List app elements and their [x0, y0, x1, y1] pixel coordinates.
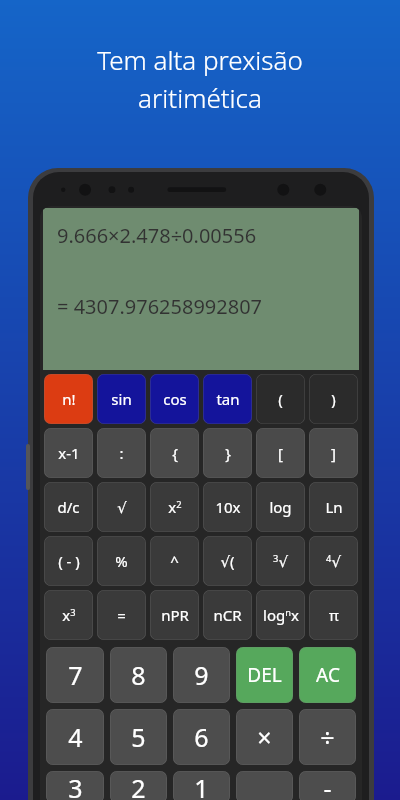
staticText: 5	[131, 720, 146, 754]
staticText: 2	[131, 771, 146, 800]
button[interactable]: }	[203, 428, 252, 478]
button[interactable]: 4	[46, 709, 104, 765]
button[interactable]: 10x	[203, 482, 252, 532]
staticText: %	[115, 551, 128, 571]
staticText: Ln	[325, 497, 343, 517]
staticText: 9.666×2.478÷0.00556	[57, 222, 257, 249]
staticText: )	[331, 389, 336, 409]
button[interactable]: nPR	[150, 590, 199, 640]
button[interactable]: 6	[173, 709, 230, 765]
button[interactable]: 1	[173, 771, 230, 800]
button[interactable]: √	[97, 482, 146, 532]
button[interactable]: Ln	[309, 482, 358, 532]
staticText: }	[225, 443, 231, 463]
staticText: π	[329, 605, 339, 625]
staticText: (	[278, 389, 283, 409]
button[interactable]: x2	[150, 482, 199, 532]
button[interactable]: n!	[44, 374, 93, 424]
staticText: cos	[163, 389, 187, 409]
staticText: ]	[331, 443, 336, 463]
staticText: x3	[62, 605, 76, 625]
button[interactable]: DEL	[236, 647, 293, 703]
staticText: tan	[216, 389, 240, 409]
button[interactable]: :	[97, 428, 146, 478]
staticText: ÷	[320, 720, 335, 754]
staticText: 9	[194, 658, 209, 692]
staticText: 3	[68, 771, 83, 800]
button[interactable]: log	[256, 482, 305, 532]
button[interactable]: =	[97, 590, 146, 640]
staticText: ^	[170, 551, 179, 571]
staticText: 6	[194, 720, 209, 754]
staticText: =	[117, 605, 126, 625]
button[interactable]: ^	[150, 536, 199, 586]
staticText: √(	[220, 551, 235, 571]
button[interactable]: {	[150, 428, 199, 478]
button[interactable]: [	[256, 428, 305, 478]
button[interactable]: 9	[173, 647, 230, 703]
button[interactable]: 2	[110, 771, 167, 800]
button[interactable]: 5	[110, 709, 167, 765]
staticText: ×	[257, 720, 272, 754]
staticText: x-1	[58, 443, 80, 463]
staticText: 4√	[326, 552, 341, 570]
button[interactable]: ( - )	[44, 536, 93, 586]
staticText: Tem alta prexisão	[20, 42, 380, 77]
staticText: nPR	[161, 605, 189, 625]
staticText: 7	[68, 658, 83, 692]
staticText: :	[119, 443, 124, 463]
staticText: 4	[68, 720, 83, 754]
button[interactable]: )	[309, 374, 358, 424]
button[interactable]: %	[97, 536, 146, 586]
button[interactable]: ]	[309, 428, 358, 478]
staticText: DEL	[247, 662, 282, 688]
button[interactable]: 7	[46, 647, 104, 703]
button[interactable]: x3	[44, 590, 93, 640]
staticText: √	[117, 499, 127, 516]
button[interactable]: 3	[46, 771, 104, 800]
button[interactable]: 4√	[309, 536, 358, 586]
staticText: d/c	[57, 497, 80, 517]
button[interactable]: sin	[97, 374, 146, 424]
button[interactable]: 3√	[256, 536, 305, 586]
staticText: 3√	[273, 552, 288, 570]
button[interactable]: nCR	[203, 590, 252, 640]
staticText: sin	[111, 389, 132, 409]
staticText: 8	[131, 658, 146, 692]
staticText: AC	[316, 662, 340, 688]
staticText: {	[172, 443, 178, 463]
button[interactable]: cos	[150, 374, 199, 424]
staticText: = 4307.976258992807	[57, 293, 263, 320]
button[interactable]: d/c	[44, 482, 93, 532]
button[interactable]: ×	[236, 709, 293, 765]
staticText: ( - )	[58, 551, 80, 571]
staticText: lognx	[263, 605, 299, 625]
button[interactable]: AC	[299, 647, 356, 703]
button[interactable]: Blank key	[236, 771, 293, 800]
button[interactable]: tan	[203, 374, 252, 424]
staticText: -	[323, 771, 332, 800]
staticText: aritimética	[20, 80, 380, 115]
staticText: x2	[168, 497, 182, 517]
button[interactable]: -	[299, 771, 356, 800]
button[interactable]: x-1	[44, 428, 93, 478]
staticText: 10x	[215, 497, 241, 517]
staticText: nCR	[213, 605, 242, 625]
button[interactable]: lognx	[256, 590, 305, 640]
staticText: log	[269, 497, 292, 517]
staticText: [	[278, 443, 283, 463]
button[interactable]: (	[256, 374, 305, 424]
staticText: n!	[62, 389, 76, 409]
staticText: 1	[194, 771, 209, 800]
button[interactable]: π	[309, 590, 358, 640]
button[interactable]: ÷	[299, 709, 356, 765]
button[interactable]: 8	[110, 647, 167, 703]
button[interactable]: √(	[203, 536, 252, 586]
